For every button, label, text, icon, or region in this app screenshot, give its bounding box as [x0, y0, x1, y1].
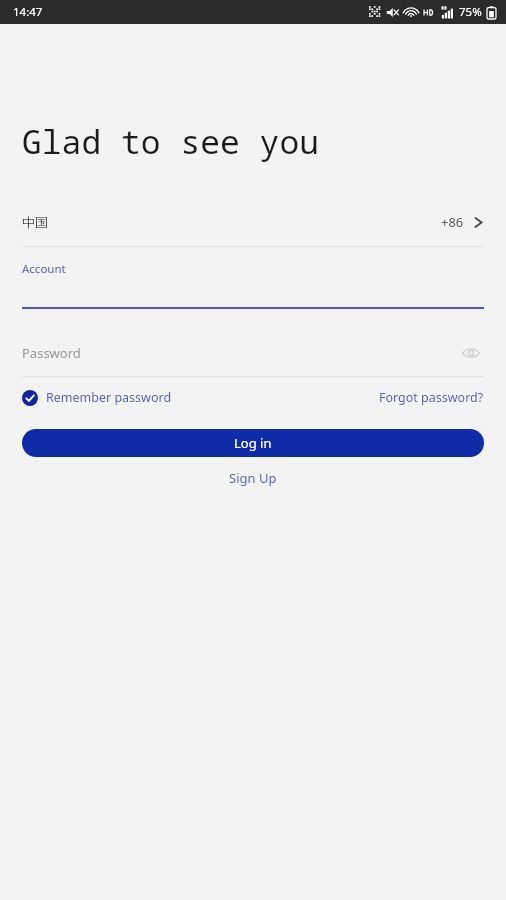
other: Select country code — [473, 214, 484, 231]
staticText: Password — [22, 344, 81, 362]
other: Remember password checked — [22, 390, 38, 406]
staticText: Glad to see you — [22, 119, 319, 164]
button[interactable]: Password — [0, 340, 506, 377]
button[interactable]: Sign Up — [0, 464, 506, 492]
button[interactable]: Forgot password? — [379, 389, 484, 406]
button[interactable]: Log in — [22, 429, 484, 457]
staticText: Forgot password? — [379, 389, 484, 406]
button[interactable]: 中国 — [0, 202, 506, 242]
staticText: 75% — [459, 4, 482, 20]
staticText: Remember password — [46, 389, 172, 406]
staticText: 中国 — [22, 214, 48, 230]
staticText: 14:47 — [13, 4, 43, 20]
button[interactable]: Account — [0, 261, 506, 309]
button[interactable]: Remember password checked — [22, 389, 172, 406]
button[interactable]: Show password — [458, 340, 484, 366]
staticText: Account — [22, 261, 66, 277]
staticText: Log in — [234, 434, 272, 452]
staticText: +86 — [441, 213, 464, 231]
staticText: Sign Up — [229, 469, 277, 487]
